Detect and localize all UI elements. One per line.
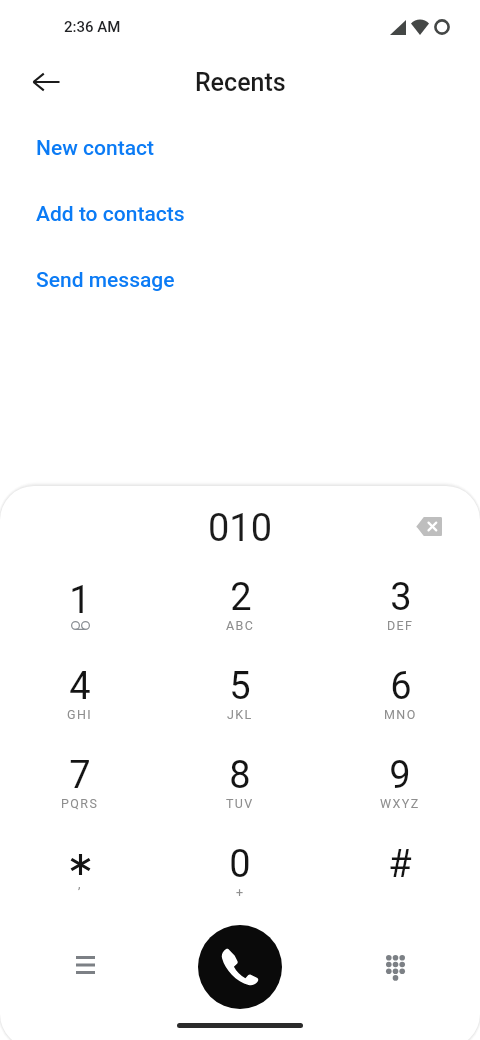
button[interactable]: Add to contacts [0,181,480,247]
button[interactable]: New contact [0,115,480,181]
button[interactable]: , [0,833,160,922]
button[interactable]: Back [22,58,70,106]
staticText: Recents [195,68,286,97]
button[interactable]: Dialpad [371,943,419,991]
button[interactable]: 3 [320,566,480,655]
staticText: GHI [67,707,93,722]
staticText: MNO [384,707,417,722]
button[interactable]: 4 [0,655,160,744]
staticText: 010 [208,506,273,551]
staticText: 8 [229,753,251,798]
staticText: 3 [390,575,412,620]
button[interactable]: 2 [160,566,320,655]
staticText: ABC [226,618,255,633]
staticText: 0 [229,842,251,887]
staticText: # [388,842,412,887]
staticText: 1 [69,578,91,623]
button[interactable]: 9 [320,744,480,833]
staticText: 5 [229,664,251,709]
staticText: PQRS [61,796,99,811]
staticText: 2 [230,575,252,620]
button[interactable]: Call history [61,941,109,989]
staticText: WXYZ [380,796,420,811]
staticText: 2:36 AM [64,18,121,36]
staticText: 6 [390,664,412,709]
staticText: DEF [387,618,414,633]
staticText: , [78,876,82,891]
button[interactable]: Call [198,925,282,1009]
staticText: New contact [36,136,155,161]
button[interactable]: # [320,833,480,922]
staticText: Add to contacts [36,202,185,227]
staticText: TUV [226,796,254,811]
button[interactable]: 1 [0,566,160,655]
staticText: Send message [36,268,175,293]
staticText: 7 [69,753,91,798]
staticText: 9 [389,753,411,798]
button[interactable]: 7 [0,744,160,833]
button[interactable]: 5 [160,655,320,744]
button[interactable]: 0 [160,833,320,922]
button[interactable]: Send message [0,247,480,313]
button[interactable]: 8 [160,744,320,833]
button[interactable]: Backspace [406,503,452,549]
staticText: 4 [69,664,91,709]
button[interactable]: 6 [320,655,480,744]
staticText: + [236,885,245,900]
staticText: JKL [227,707,253,722]
